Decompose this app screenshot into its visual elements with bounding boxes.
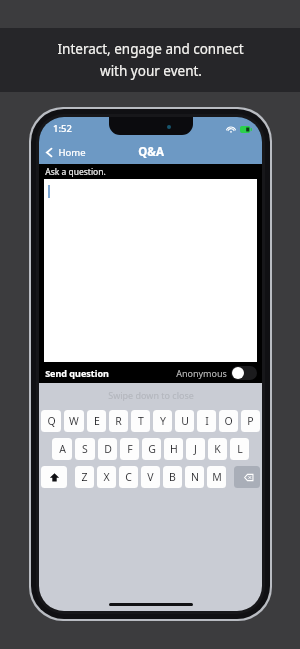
button[interactable]: Anonymous toggle: [231, 366, 257, 380]
button[interactable]: [44, 179, 257, 362]
button[interactable]: I: [197, 410, 216, 432]
button[interactable]: N: [185, 466, 204, 488]
staticText: F: [127, 442, 133, 456]
button[interactable]: M: [207, 466, 226, 488]
button[interactable]: T: [131, 410, 150, 432]
button[interactable]: O: [219, 410, 238, 432]
staticText: V: [147, 470, 154, 484]
staticText: K: [214, 442, 221, 456]
button[interactable]: A: [52, 438, 72, 460]
button[interactable]: C: [119, 466, 138, 488]
button[interactable]: J: [186, 438, 205, 460]
staticText: I: [205, 414, 209, 428]
staticText: T: [138, 414, 144, 428]
button[interactable]: Q: [41, 410, 61, 432]
staticText: D: [104, 442, 112, 456]
staticText: S: [82, 442, 88, 456]
button[interactable]: F: [120, 438, 139, 460]
staticText: W: [69, 414, 79, 428]
staticText: Ask a question.: [45, 166, 106, 178]
button[interactable]: D: [98, 438, 117, 460]
button[interactable]: G: [142, 438, 161, 460]
button[interactable]: W: [64, 410, 84, 432]
button[interactable]: Send question: [39, 364, 115, 382]
button[interactable]: H: [164, 438, 183, 460]
staticText: Y: [160, 414, 166, 428]
button[interactable]: E: [87, 410, 106, 432]
staticText: C: [125, 470, 132, 484]
staticText: N: [191, 470, 199, 484]
staticText: E: [94, 414, 100, 428]
staticText: 1:52: [53, 122, 72, 135]
staticText: J: [194, 442, 197, 456]
staticText: Home: [58, 146, 86, 159]
staticText: B: [169, 470, 176, 484]
staticText: A: [59, 442, 66, 456]
staticText: G: [148, 442, 156, 456]
staticText: P: [247, 414, 254, 428]
button[interactable]: P: [241, 410, 260, 432]
staticText: Interact, engage and connect: [57, 40, 244, 58]
button[interactable]: Home: [39, 143, 94, 162]
staticText: O: [224, 414, 233, 428]
button[interactable]: Y: [153, 410, 172, 432]
button[interactable]: S: [75, 438, 95, 460]
staticText: M: [212, 470, 222, 484]
staticText: Q: [47, 414, 56, 428]
staticText: U: [181, 414, 189, 428]
button[interactable]: X: [97, 466, 116, 488]
staticText: Swipe down to close: [108, 389, 194, 401]
staticText: X: [103, 470, 110, 484]
button[interactable]: V: [141, 466, 160, 488]
button[interactable]: U: [175, 410, 194, 432]
button[interactable]: Backspace: [234, 466, 260, 488]
staticText: Z: [81, 470, 88, 484]
button[interactable]: Z: [75, 466, 94, 488]
staticText: R: [115, 414, 122, 428]
button[interactable]: L: [230, 438, 249, 460]
staticText: H: [170, 442, 178, 456]
staticText: L: [237, 442, 243, 456]
staticText: Q&A: [138, 144, 164, 160]
button[interactable]: B: [163, 466, 182, 488]
staticText: Anonymous: [176, 367, 227, 379]
staticText: with your event.: [100, 62, 202, 80]
button[interactable]: R: [109, 410, 128, 432]
button[interactable]: K: [208, 438, 227, 460]
button[interactable]: Shift: [41, 466, 67, 488]
